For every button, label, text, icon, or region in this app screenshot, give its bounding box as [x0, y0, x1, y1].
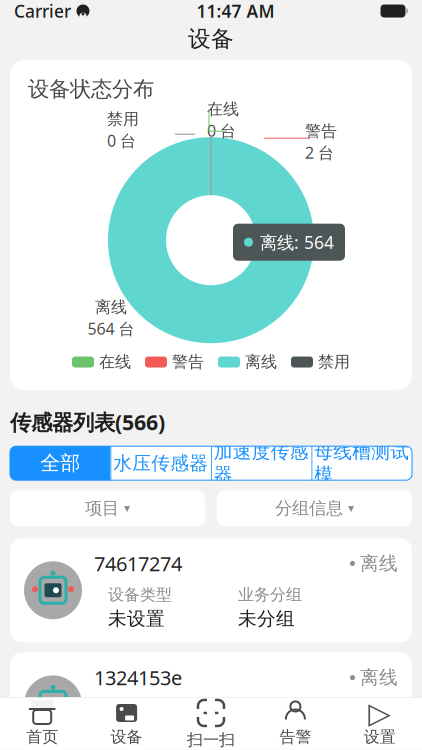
staticText: 业务分组 [238, 699, 302, 719]
staticText: 0 台 [207, 120, 236, 141]
staticText: 警告 [305, 121, 337, 141]
button[interactable]: 全部 [10, 446, 110, 480]
button[interactable]: 首页 [0, 698, 84, 750]
staticText: 未分组 [238, 721, 295, 744]
staticText: 传感器列表(566) [10, 408, 165, 436]
button[interactable]: 分组信息 [217, 490, 412, 526]
staticText: 警告 [172, 352, 204, 372]
staticText: ▾ [348, 501, 354, 515]
staticText: ▷ [368, 696, 391, 730]
button[interactable]: 1324153e [10, 652, 412, 750]
staticText: Carrier [14, 0, 71, 22]
staticText: 离线 [95, 297, 127, 317]
button[interactable]: 水压传感器 [110, 446, 211, 480]
staticText: 业务分组 [238, 585, 302, 604]
staticText: 11:47 AM [196, 0, 274, 22]
staticText: 禁用 [318, 352, 350, 372]
staticText: 禁用 [107, 109, 139, 129]
staticText: 加速度传感器 [214, 440, 309, 486]
staticText: 告警 [279, 727, 311, 747]
staticText: 2 台 [305, 142, 334, 163]
button[interactable]: 设备 [84, 698, 169, 750]
staticText: 设备 [111, 727, 143, 747]
staticText: 分组信息 [275, 497, 343, 519]
staticText: 1324153e [94, 664, 182, 691]
button[interactable]: 扫一扫 [169, 698, 253, 750]
staticText: 扫一扫 [187, 730, 235, 750]
staticText: 未设置 [108, 721, 165, 744]
staticText: 设备类型 [108, 585, 172, 604]
staticText: 在线 [99, 352, 131, 372]
staticText: 在线 [207, 99, 239, 119]
staticText: 设备状态分布 [28, 76, 154, 102]
button[interactable]: 母线槽测试模 [311, 446, 412, 480]
staticText: ▾ [124, 501, 130, 515]
button[interactable]: ▷ [338, 698, 422, 750]
staticText: 设备 [188, 25, 234, 53]
button[interactable]: 项目 [10, 490, 205, 526]
staticText: 0 台 [107, 130, 136, 151]
button[interactable]: 告警 [253, 698, 338, 750]
staticText: 水压传感器 [113, 452, 208, 475]
staticText: 未设置 [108, 607, 165, 630]
staticText: 母线槽测试模 [314, 440, 409, 486]
staticText: 设置 [364, 727, 396, 747]
staticText: 离线: 564 [260, 231, 334, 254]
button[interactable]: 加速度传感器 [211, 446, 311, 480]
staticText: 564 台 [87, 318, 134, 339]
staticText: 未分组 [238, 607, 295, 630]
staticText: 离线 [360, 552, 398, 575]
button[interactable]: 74617274 [10, 538, 412, 642]
staticText: 74617274 [94, 550, 182, 577]
staticText: 项目 [85, 497, 119, 519]
staticText: 设备类型 [108, 699, 172, 719]
staticText: 离线 [360, 666, 398, 689]
staticText: 首页 [26, 727, 58, 747]
staticText: 全部 [40, 451, 80, 475]
staticText: 离线 [245, 352, 277, 372]
